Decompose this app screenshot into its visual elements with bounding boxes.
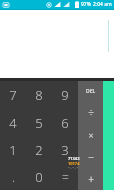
button[interactable]: 5 (26, 109, 52, 136)
button[interactable]: 6 (52, 109, 78, 136)
button[interactable]: Delete (78, 81, 103, 102)
staticText: DEL (86, 88, 96, 95)
staticText: 10174 (68, 161, 80, 166)
staticText: 2:04 am (93, 1, 112, 8)
button[interactable]: 3 (52, 136, 78, 163)
staticText: + (88, 172, 94, 186)
staticText: 97% (81, 1, 91, 8)
button[interactable]: 9 (52, 81, 78, 109)
staticText: 2 (35, 141, 43, 159)
button[interactable]: ÷ (78, 102, 103, 124)
button[interactable]: 8 (26, 81, 52, 109)
staticText: 5 (35, 114, 43, 132)
button[interactable]: 7 (0, 81, 26, 109)
staticText: 9 (61, 86, 69, 104)
staticText: 3 (61, 141, 69, 159)
staticText: 4 (9, 114, 17, 132)
button[interactable]: . (0, 163, 26, 190)
button[interactable]: 0 (26, 163, 52, 190)
staticText: 0 (35, 168, 43, 186)
staticText: − (88, 150, 94, 164)
staticText: . (12, 169, 15, 185)
button[interactable]: × (78, 124, 103, 146)
staticText: 7 (9, 86, 17, 104)
staticText: 1 (9, 141, 17, 159)
button[interactable]: 1 (0, 136, 26, 163)
staticText: ÷ (88, 106, 94, 120)
button[interactable]: 4 (0, 109, 26, 136)
button[interactable]: + (78, 168, 103, 190)
button[interactable]: 2 (26, 136, 52, 163)
staticText: = (62, 169, 69, 185)
staticText: 8 (35, 86, 43, 104)
staticText: 71342 (68, 156, 80, 161)
staticText: 6 (61, 114, 69, 132)
staticText: ~ - ~ - ~ (68, 166, 79, 170)
staticText: × (88, 129, 94, 141)
button[interactable]: − (78, 146, 103, 168)
button[interactable]: = (52, 163, 78, 190)
